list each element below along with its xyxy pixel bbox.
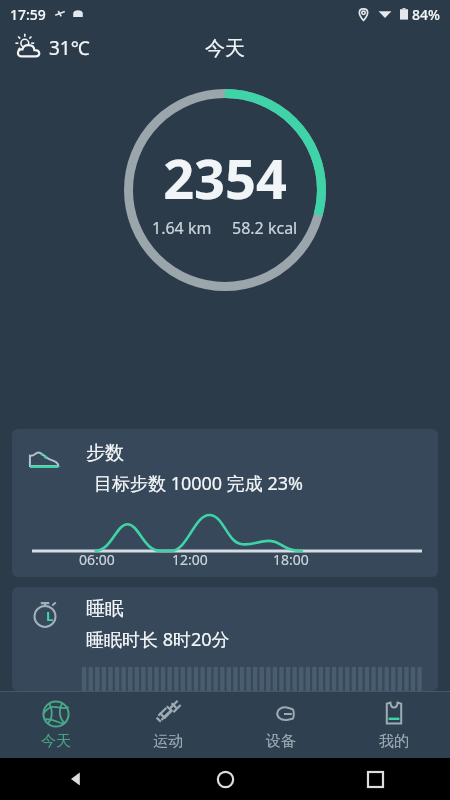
staticText: 2354 <box>163 141 287 215</box>
button[interactable]: Sleep <box>12 587 438 691</box>
staticText: 设备 <box>266 732 296 751</box>
button[interactable]: 运动 <box>112 692 224 758</box>
staticText: 今天 <box>41 732 71 751</box>
staticText: 17:59 <box>10 5 46 24</box>
button[interactable]: Home <box>217 771 234 788</box>
staticText: 今天 <box>205 36 245 61</box>
other: Steps <box>28 443 60 475</box>
staticText: 31℃ <box>49 35 90 61</box>
staticText: 目标步数 10000 完成 23% <box>94 471 304 496</box>
button[interactable]: Recents <box>368 772 383 787</box>
staticText: 12:00 <box>172 550 208 569</box>
staticText: 1.64 km <box>152 217 212 239</box>
button[interactable]: 我的 <box>337 692 450 758</box>
button[interactable]: Weather <box>10 29 94 67</box>
staticText: 步数 <box>86 441 124 465</box>
button[interactable]: Steps <box>12 429 438 577</box>
staticText: 06:00 <box>79 550 115 569</box>
other: Weather <box>14 33 44 63</box>
other: Sleep <box>30 599 60 629</box>
staticText: 睡眠时长 8时20分 <box>86 627 230 652</box>
button[interactable]: 今天 <box>0 692 112 758</box>
staticText: 睡眠 <box>86 597 124 621</box>
staticText: 18:00 <box>273 550 309 569</box>
staticText: L <box>46 607 54 625</box>
button[interactable]: 设备 <box>224 692 337 758</box>
staticText: 运动 <box>153 732 183 751</box>
staticText: 我的 <box>379 732 409 751</box>
button[interactable]: Back <box>67 771 83 787</box>
staticText: 84% <box>412 5 440 24</box>
staticText: 58.2 kcal <box>232 217 298 239</box>
